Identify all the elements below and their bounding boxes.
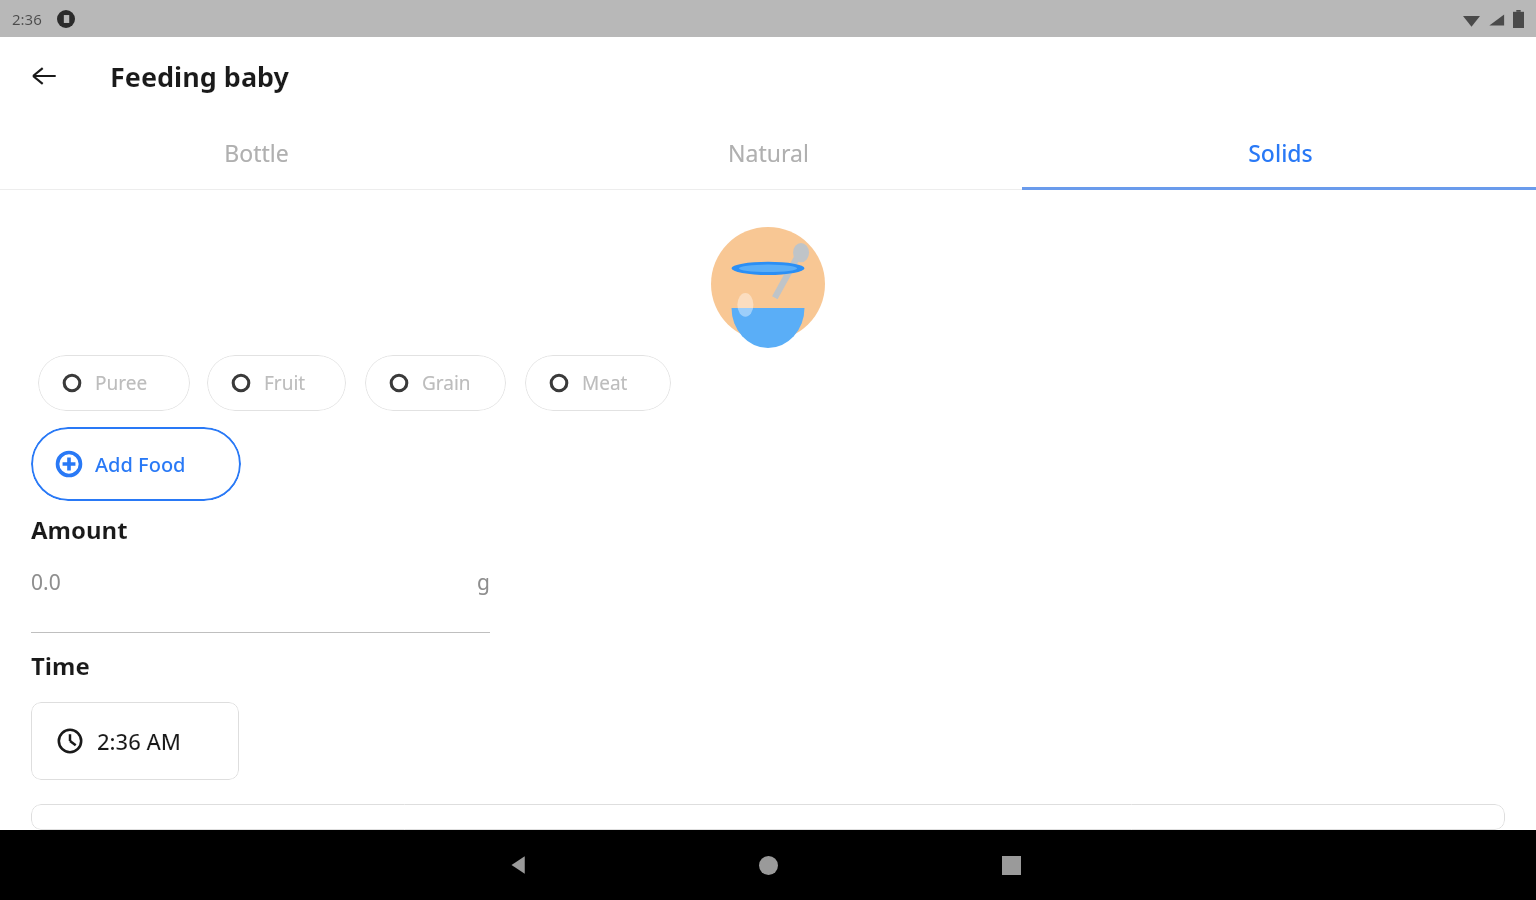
button[interactable]: Natural <box>512 115 1024 190</box>
button[interactable]: Solids <box>1024 115 1536 190</box>
staticText: Fruit <box>264 370 306 396</box>
button[interactable]: 2:36 AM <box>31 702 239 780</box>
staticText: Natural <box>728 137 809 168</box>
staticText: Feeding baby <box>110 58 290 95</box>
staticText: 2:36 <box>12 9 42 29</box>
button[interactable] <box>31 804 1505 830</box>
staticText: Grain <box>422 370 471 396</box>
staticText: Puree <box>95 370 148 396</box>
button[interactable]: Grain <box>365 355 506 411</box>
button[interactable]: Recent apps <box>982 836 1040 894</box>
staticText: g <box>477 568 490 597</box>
staticText: Add Food <box>95 451 186 478</box>
staticText: Amount <box>31 513 128 546</box>
button[interactable]: Puree <box>38 355 190 411</box>
button[interactable]: Bottle <box>0 115 512 190</box>
staticText: Time <box>31 649 90 682</box>
staticText: Solids <box>1248 137 1313 168</box>
button[interactable]: Back <box>20 52 68 100</box>
staticText: 0.0 <box>31 568 61 597</box>
button[interactable]: Add Food <box>31 427 241 501</box>
staticText: Meat <box>582 370 628 396</box>
button[interactable]: 0.0 <box>31 568 490 597</box>
button[interactable]: Meat <box>525 355 671 411</box>
staticText: Bottle <box>224 137 289 168</box>
button[interactable]: Back <box>490 836 548 894</box>
staticText: 2:36 AM <box>97 726 182 756</box>
button[interactable]: Fruit <box>207 355 346 411</box>
button[interactable]: Home <box>739 836 797 894</box>
